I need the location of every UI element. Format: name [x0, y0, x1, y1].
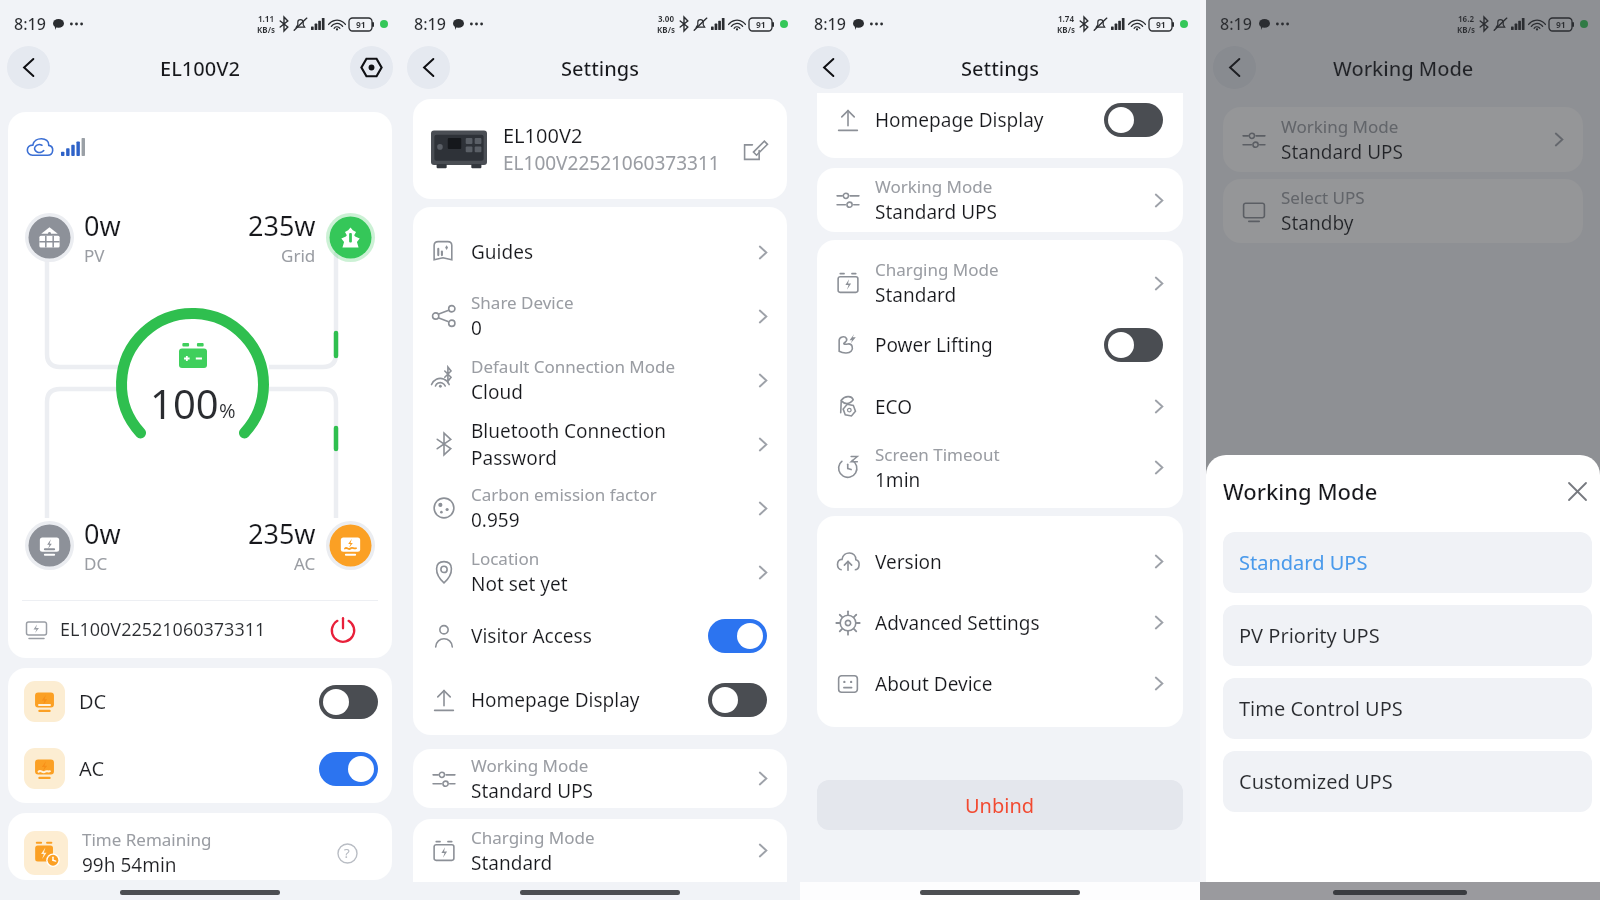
staticText: 91 — [1156, 19, 1166, 31]
staticText: Version — [875, 549, 942, 575]
staticText: % — [219, 397, 236, 424]
staticText: Standard — [471, 850, 553, 876]
button[interactable]: Charging Mode — [413, 819, 787, 882]
staticText: Standby — [1281, 210, 1354, 236]
staticText: Working Mode — [1281, 115, 1399, 138]
button[interactable]: Time Remaining — [8, 813, 392, 880]
button[interactable]: DC — [8, 668, 392, 735]
staticText: 0w — [84, 207, 121, 244]
staticText: 235w — [248, 515, 316, 552]
button[interactable]: Location — [413, 540, 787, 604]
staticText: 8:19 — [414, 13, 446, 35]
button[interactable]: Back — [407, 46, 450, 89]
button[interactable]: Screen Timeout — [817, 437, 1183, 498]
button[interactable]: Customized UPS — [1223, 751, 1592, 812]
staticText: Power Lifting — [875, 332, 993, 358]
button[interactable]: Off — [708, 683, 767, 717]
staticText: 99h 54min — [82, 852, 177, 878]
staticText: 1.74 — [1058, 13, 1074, 24]
staticText: EL100V2 — [160, 55, 240, 82]
button[interactable]: Standard UPS — [1223, 532, 1592, 593]
staticText: 100 — [150, 376, 219, 430]
staticText: Working Mode — [875, 175, 993, 198]
button[interactable]: Select UPS — [1223, 179, 1583, 243]
button[interactable]: Back — [7, 46, 50, 89]
button[interactable]: Back — [807, 46, 850, 89]
staticText: Share Device — [471, 291, 574, 314]
staticText: Working Mode — [471, 754, 589, 777]
staticText: AC — [294, 552, 316, 575]
staticText: Time Control UPS — [1239, 695, 1403, 722]
staticText: EL100V2 — [503, 122, 583, 149]
button[interactable]: On — [319, 752, 378, 786]
button[interactable]: Close — [1562, 476, 1592, 506]
staticText: Default Connection Mode — [471, 355, 676, 378]
staticText: 16.2 — [1458, 13, 1474, 24]
button[interactable]: Default Connection Mode — [413, 348, 787, 412]
button[interactable]: Back — [1213, 46, 1256, 89]
staticText: Cloud — [471, 379, 523, 405]
button[interactable]: Carbon emission factor — [413, 476, 787, 540]
button[interactable]: PV Priority UPS — [1223, 605, 1592, 666]
button[interactable]: Edit — [739, 133, 771, 165]
staticText: 8:19 — [1220, 13, 1252, 35]
button[interactable]: Off — [1104, 103, 1163, 137]
button[interactable]: Share Device — [413, 284, 787, 348]
staticText: Working Mode — [1223, 476, 1378, 506]
staticText: 91 — [356, 19, 366, 31]
staticText: Guides — [471, 239, 533, 265]
staticText: Standard UPS — [875, 199, 997, 225]
staticText: AC — [79, 755, 105, 782]
button[interactable]: Working Mode — [1223, 107, 1583, 172]
button[interactable]: Version — [817, 531, 1183, 592]
button[interactable]: Help — [334, 840, 360, 866]
staticText: Bluetooth Connection — [471, 418, 666, 444]
staticText: Homepage Display — [471, 687, 640, 713]
button[interactable]: Off — [1104, 328, 1163, 362]
button[interactable]: Homepage Display — [413, 668, 787, 732]
button[interactable]: Working Mode — [817, 168, 1183, 232]
staticText: ? — [344, 844, 350, 862]
button[interactable]: Bluetooth Connection — [413, 412, 787, 476]
staticText: PV — [84, 244, 105, 267]
staticText: 1.11 — [258, 13, 274, 24]
button[interactable]: Power Lifting — [817, 314, 1183, 376]
staticText: KB/s — [1457, 24, 1475, 35]
button[interactable]: About Device — [817, 653, 1183, 714]
button[interactable]: Unbind — [817, 780, 1183, 830]
staticText: Not set yet — [471, 571, 568, 597]
button[interactable]: Advanced Settings — [817, 592, 1183, 653]
staticText: Customized UPS — [1239, 768, 1393, 795]
button[interactable]: AC — [8, 735, 392, 802]
button[interactable]: Guides — [413, 220, 787, 284]
staticText: Standard — [875, 282, 957, 308]
button[interactable]: ECO — [817, 376, 1183, 437]
button[interactable]: Visitor Access — [413, 604, 787, 668]
staticText: DC — [84, 552, 108, 575]
button[interactable]: Homepage Display — [817, 93, 1183, 147]
staticText: Standard UPS — [471, 778, 593, 804]
staticText: Password — [471, 445, 557, 471]
staticText: Time Remaining — [82, 828, 212, 851]
staticText: Charging Mode — [471, 826, 595, 849]
staticText: DC — [79, 688, 107, 715]
button[interactable]: EL100V22521060373311 — [8, 601, 392, 658]
button[interactable]: Working Mode — [413, 749, 787, 808]
button[interactable]: On — [708, 619, 767, 653]
staticText: About Device — [875, 671, 993, 697]
staticText: 91 — [1556, 19, 1566, 31]
staticText: 8:19 — [14, 13, 46, 35]
button[interactable]: Power — [327, 614, 359, 646]
staticText: 91 — [756, 19, 766, 31]
button[interactable]: Charging Mode — [817, 252, 1183, 314]
button[interactable]: Off — [319, 685, 378, 719]
button[interactable]: Time Control UPS — [1223, 678, 1592, 739]
staticText: Location — [471, 547, 540, 570]
staticText: Standard UPS — [1239, 549, 1368, 576]
staticText: Advanced Settings — [875, 610, 1040, 636]
staticText: 8:19 — [814, 13, 846, 35]
staticText: 235w — [248, 207, 316, 244]
button[interactable]: Device settings — [350, 46, 393, 89]
staticText: Screen Timeout — [875, 443, 1000, 466]
staticText: Settings — [561, 55, 639, 82]
